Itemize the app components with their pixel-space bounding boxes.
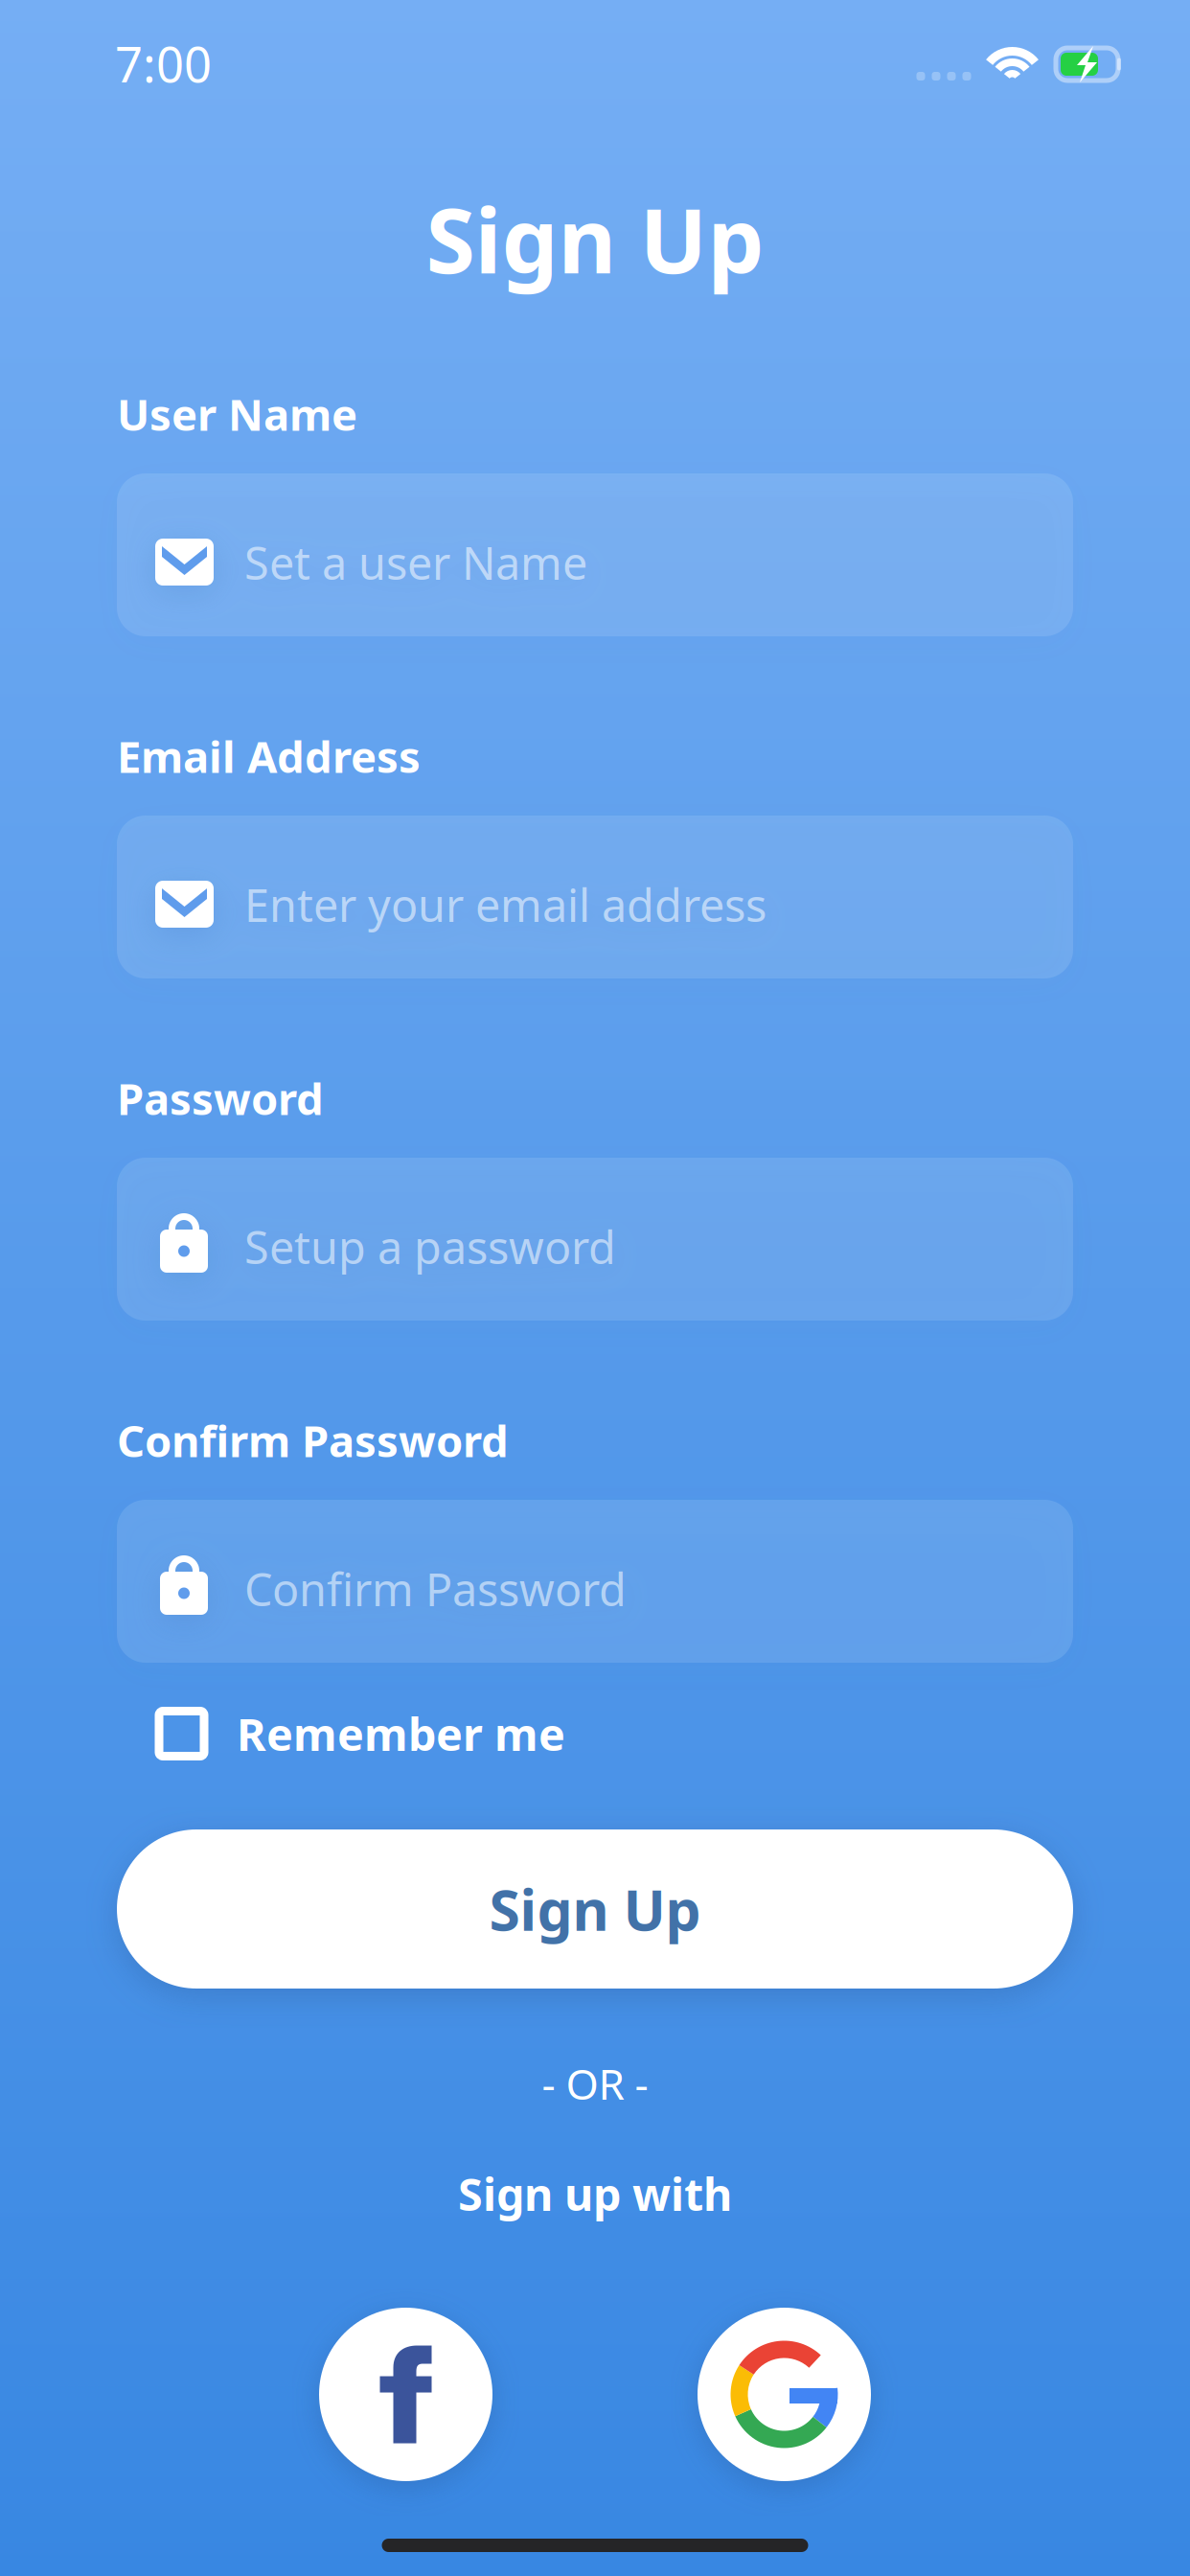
staticText: 7:00 xyxy=(115,31,212,96)
staticText: Password xyxy=(117,1069,324,1127)
staticText: Email Address xyxy=(117,727,421,785)
staticText: - OR - xyxy=(542,2055,648,2111)
staticText: Setup a password xyxy=(244,1217,616,1276)
staticText: Confirm Password xyxy=(244,1559,627,1619)
button[interactable]: Confirm Password xyxy=(117,1500,1073,1663)
button[interactable]: Enter your email address xyxy=(117,816,1073,978)
staticText: Sign Up xyxy=(426,179,764,298)
button[interactable]: Sign up with Google xyxy=(698,2308,871,2481)
staticText: Sign Up xyxy=(489,1872,701,1946)
button[interactable]: Remember me xyxy=(0,1693,1190,1774)
staticText: Enter your email address xyxy=(244,875,767,934)
button[interactable]: Sign up with Facebook xyxy=(319,2308,492,2481)
button[interactable]: Sign Up xyxy=(117,1829,1073,1989)
staticText: Sign up with xyxy=(458,2164,732,2223)
staticText: User Name xyxy=(117,385,357,443)
staticText: Remember me xyxy=(237,1704,565,1763)
button[interactable]: Setup a password xyxy=(117,1158,1073,1321)
staticText: Set a user Name xyxy=(244,533,587,592)
staticText: Confirm Password xyxy=(117,1411,509,1469)
button[interactable]: Set a user Name xyxy=(117,473,1073,636)
